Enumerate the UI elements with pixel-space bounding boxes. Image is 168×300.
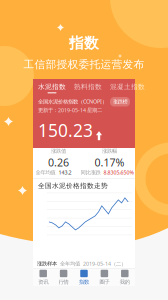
staticText: 8.8305,650% [103, 169, 133, 176]
staticText: 2019-05-14（二） [83, 260, 126, 267]
staticText: 同比涨跌 [80, 169, 100, 176]
staticText: 圈子 [99, 279, 109, 285]
staticText: 全国水泥价格指数走势 [38, 182, 108, 190]
staticText: 行情 [59, 279, 69, 285]
staticText: 涨跌榜 [112, 98, 127, 105]
staticText: 全年均值 [60, 260, 80, 267]
staticText: 0.26 [48, 155, 69, 169]
staticText: 143.2 [58, 169, 71, 176]
staticText: 全年均值 [35, 169, 55, 176]
staticText: 资讯 [38, 279, 48, 285]
button[interactable]: 熟料指数 [74, 83, 102, 93]
button[interactable]: 圈子 [94, 269, 115, 286]
button[interactable]: 混凝土指数 [110, 83, 145, 93]
button[interactable]: 资讯 [33, 269, 53, 286]
button[interactable]: 涨跌榜 [110, 97, 130, 107]
staticText: 涨跌值 [51, 148, 66, 154]
staticText: 工信部授权委托运营发布 [23, 58, 144, 71]
staticText: 我的 [120, 279, 130, 285]
staticText: 熟料指数 [74, 83, 102, 91]
button[interactable]: 行情 [53, 269, 74, 286]
staticText: 涨跌幅 [102, 148, 117, 154]
staticText: 指数 [69, 34, 99, 52]
staticText: 全国水泥价格指数（CCNOPI） [38, 98, 107, 105]
button[interactable]: 指数 [74, 269, 94, 286]
staticText: 0.17% [94, 155, 124, 169]
staticText: 混凝土指数 [110, 83, 145, 91]
staticText: 涨跌样本 [37, 260, 57, 267]
staticText: 更新于：2019-05-14 星期二 [38, 107, 102, 114]
button[interactable]: 水泥指数 [38, 83, 66, 93]
button[interactable]: 我的 [115, 269, 135, 286]
staticText: 水泥指数 [38, 83, 66, 91]
staticText: 150.23 [38, 119, 93, 142]
staticText: 指数 [79, 279, 89, 285]
